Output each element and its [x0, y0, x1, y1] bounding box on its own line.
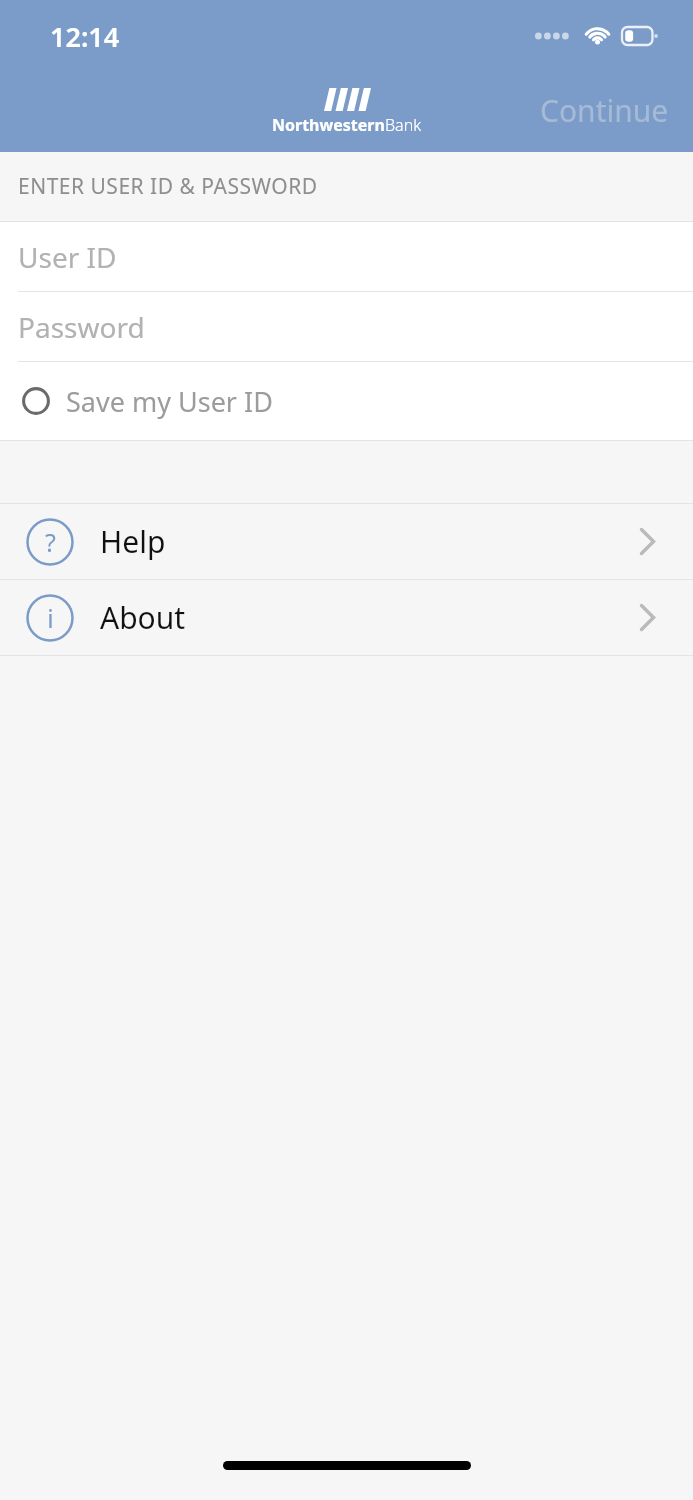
staticText: Help: [100, 521, 166, 562]
staticText: ?: [45, 525, 56, 559]
staticText: Password: [18, 308, 145, 346]
button[interactable]: Continue: [516, 80, 693, 141]
other: Open About: [640, 604, 655, 631]
button[interactable]: Save my User ID: [0, 362, 693, 440]
staticText: i: [47, 601, 54, 635]
button[interactable]: ?: [0, 504, 693, 579]
staticText: 12:14: [50, 18, 120, 55]
staticText: Bank: [385, 114, 422, 136]
other: Open Help: [640, 528, 655, 555]
staticText: Continue: [540, 90, 669, 131]
button[interactable]: i: [0, 580, 693, 655]
button[interactable]: Password: [0, 292, 693, 361]
staticText: User ID: [18, 238, 117, 276]
button[interactable]: User ID: [0, 222, 693, 291]
staticText: Save my User ID: [66, 383, 273, 420]
staticText: About: [100, 597, 186, 638]
staticText: Northwestern: [272, 114, 385, 136]
staticText: ENTER USER ID & PASSWORD: [18, 172, 318, 201]
